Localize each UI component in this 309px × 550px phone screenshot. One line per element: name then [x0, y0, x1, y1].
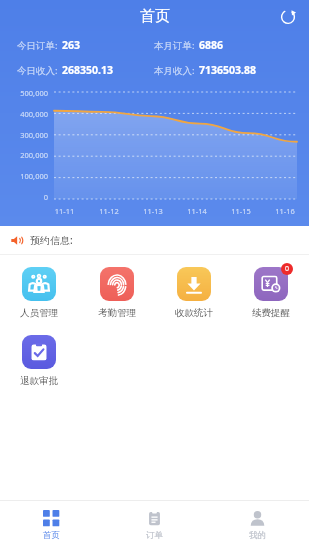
staticText: 本月订单:	[154, 39, 195, 52]
button[interactable]: 我的	[206, 501, 309, 550]
staticText: 100,000	[0, 171, 48, 181]
staticText: 考勤管理	[98, 307, 136, 319]
staticText: 11-13	[131, 206, 175, 216]
staticText: 263	[62, 38, 81, 52]
staticText: 退款审批	[20, 375, 58, 387]
staticText: 收款统计	[175, 307, 213, 319]
staticText: 人员管理	[20, 307, 58, 319]
button[interactable]: 人员管理	[0, 265, 78, 321]
staticText: 11-14	[175, 206, 219, 216]
button[interactable]: 0	[232, 265, 309, 321]
staticText: 200,000	[0, 150, 48, 160]
button[interactable]: 订单	[103, 501, 206, 550]
staticText: 6886	[199, 38, 224, 52]
staticText: 7136503.88	[199, 63, 257, 77]
staticText: 0	[0, 192, 48, 202]
staticText: 今日收入:	[17, 64, 58, 77]
staticText: 首页	[43, 530, 60, 541]
staticText: 500,000	[0, 88, 48, 98]
staticText: 400,000	[0, 109, 48, 119]
staticText: 今日订单:	[17, 39, 58, 52]
staticText: 11-11	[42, 206, 87, 216]
button[interactable]: 退款审批	[0, 333, 77, 389]
staticText: 续费提醒	[252, 307, 290, 319]
button[interactable]: 考勤管理	[78, 265, 155, 321]
staticText: 11-15	[219, 206, 263, 216]
staticText: 我的	[249, 530, 266, 541]
staticText: 本月收入:	[154, 64, 195, 77]
staticText: 0	[285, 264, 290, 274]
button[interactable]: 收款统计	[155, 265, 232, 321]
button[interactable]: Refresh	[275, 4, 301, 30]
staticText: 预约信息:	[30, 233, 73, 247]
staticText: 11-16	[263, 206, 307, 216]
staticText: 首页	[140, 7, 170, 26]
staticText: 268350.13	[62, 63, 113, 77]
button[interactable]: 首页	[0, 501, 103, 550]
staticText: 300,000	[0, 130, 48, 140]
staticText: 订单	[146, 530, 163, 541]
staticText: 11-12	[87, 206, 131, 216]
